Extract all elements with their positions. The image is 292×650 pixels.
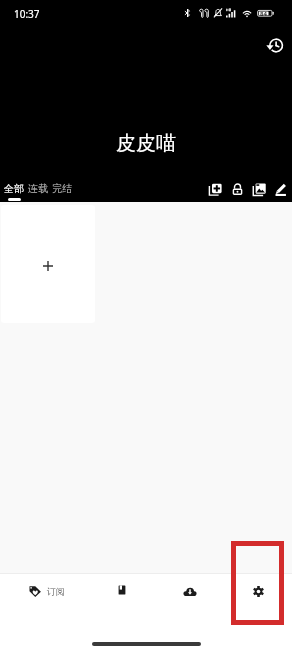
staticText: 84 (260, 10, 267, 18)
button[interactable] (1, 205, 95, 323)
button[interactable]: Add to library (204, 177, 226, 201)
button[interactable]: 连载 (26, 178, 50, 201)
button[interactable]: Edit (270, 177, 292, 201)
staticText: 完结 (52, 182, 72, 195)
button[interactable]: 完结 (50, 178, 74, 201)
button[interactable]: History (263, 33, 287, 57)
staticText: 皮皮喵 (116, 131, 176, 156)
button[interactable]: 全部 (2, 178, 26, 201)
staticText: 全部 (4, 182, 24, 195)
staticText: 10:37 (14, 7, 40, 21)
staticText: 订阅 (47, 586, 65, 597)
button[interactable]: Settings (224, 574, 292, 614)
button[interactable]: Photo library (248, 177, 270, 201)
button[interactable]: Downloads (156, 574, 224, 614)
button[interactable]: Lock (226, 177, 248, 201)
button[interactable]: 订阅 (13, 574, 81, 614)
button[interactable]: Bookshelf (88, 574, 156, 614)
staticText: 连载 (28, 182, 48, 195)
